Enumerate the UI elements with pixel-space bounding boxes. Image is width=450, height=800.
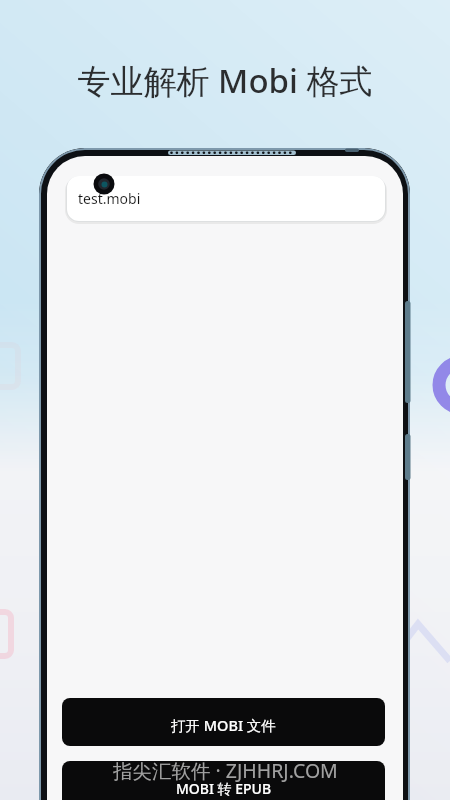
staticText: 指尖汇软件 · ZJHHRJ.COM bbox=[113, 757, 338, 784]
button[interactable]: test.mobi bbox=[67, 176, 385, 221]
button[interactable]: 打开 MOBI 文件 bbox=[62, 698, 385, 746]
button[interactable]: MOBI 转 EPUB bbox=[62, 761, 385, 800]
staticText: test.mobi bbox=[78, 189, 141, 208]
staticText: 打开 MOBI 文件 bbox=[171, 715, 276, 735]
staticText: MOBI 转 EPUB bbox=[176, 779, 272, 798]
staticText: 专业解析 Mobi 格式 bbox=[0, 58, 450, 103]
